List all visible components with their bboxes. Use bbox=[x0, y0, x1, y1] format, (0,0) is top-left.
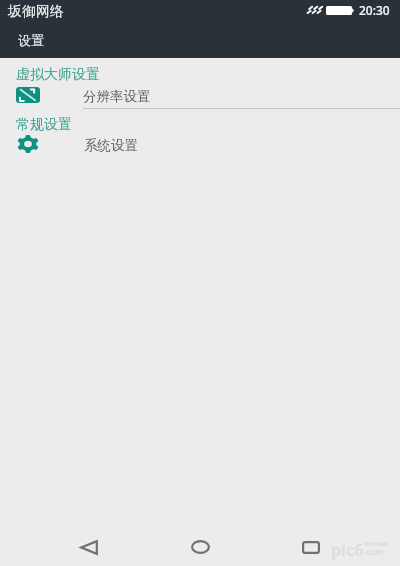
staticText: 坂御网络 bbox=[8, 3, 64, 21]
staticText: pic6 bbox=[331, 539, 364, 561]
button[interactable]: Home bbox=[176, 534, 224, 560]
staticText: 虚拟大师设置 bbox=[16, 66, 100, 84]
staticText: 系统设置 bbox=[84, 137, 138, 154]
staticText: 分辨率设置 bbox=[83, 88, 151, 105]
staticText: 20:30 bbox=[359, 2, 390, 18]
button[interactable]: 分辨率设置 bbox=[0, 83, 400, 109]
staticText: 设置 bbox=[18, 32, 44, 48]
button[interactable]: Back bbox=[65, 534, 113, 560]
button[interactable]: Recent apps bbox=[287, 534, 335, 560]
button[interactable]: 系统设置 bbox=[0, 132, 400, 158]
staticText: 常规设置 bbox=[16, 116, 72, 134]
staticText: .com bbox=[364, 546, 384, 557]
